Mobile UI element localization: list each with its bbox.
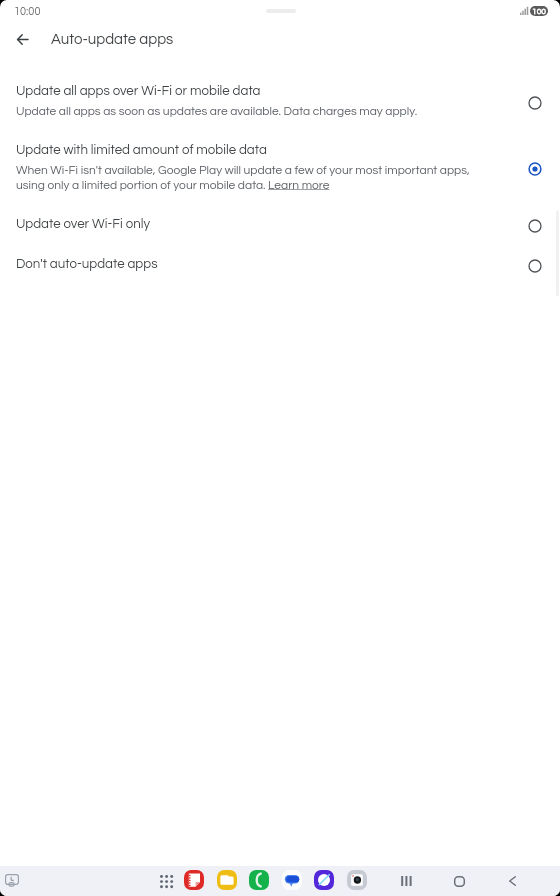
button[interactable]: Phone [249, 870, 269, 890]
button[interactable]: Internet [314, 870, 334, 890]
button[interactable]: Back [3, 20, 41, 58]
button[interactable]: Messages [282, 870, 302, 890]
button[interactable]: Back [502, 871, 522, 891]
staticText: Update all apps as soon as updates are a… [16, 105, 418, 117]
staticText: 100 [532, 7, 547, 16]
button[interactable]: Don't auto-update apps [0, 246, 560, 286]
button[interactable]: Update over Wi-Fi only [0, 206, 560, 246]
button[interactable]: Camera [347, 870, 367, 890]
staticText: Auto-update apps [51, 32, 174, 47]
staticText: When Wi-Fi isn't available, Google Play … [16, 164, 480, 191]
button[interactable]: Update with limited amount of mobile dat… [0, 130, 560, 205]
button[interactable]: DeX mode [5, 874, 19, 888]
button[interactable]: Notes [184, 870, 204, 890]
staticText: Update over Wi-Fi only [16, 217, 151, 231]
button[interactable]: Home [449, 871, 469, 891]
button[interactable]: Recent apps [396, 871, 416, 891]
button[interactable]: Update all apps over Wi-Fi or mobile dat… [0, 78, 560, 130]
staticText: Update with limited amount of mobile dat… [16, 143, 267, 157]
staticText: 10:00 [14, 6, 41, 17]
button[interactable]: My Files [217, 870, 237, 890]
staticText: Don't auto-update apps [16, 257, 158, 271]
staticText: Update all apps over Wi-Fi or mobile dat… [16, 84, 261, 98]
button[interactable]: All apps [160, 875, 172, 887]
